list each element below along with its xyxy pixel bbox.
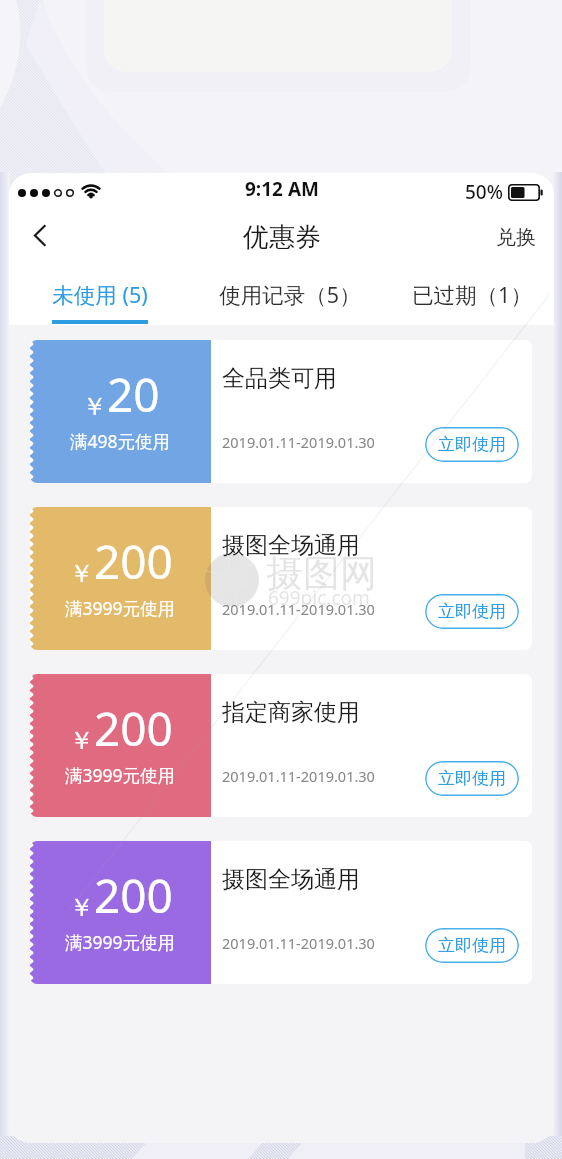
- staticText: 50%: [465, 179, 503, 205]
- staticText: 满498元使用: [70, 429, 171, 453]
- staticText: 优惠券: [243, 221, 321, 254]
- staticText: 摄图全场通用: [222, 531, 360, 560]
- staticText: 200: [94, 530, 173, 593]
- staticText: 200: [94, 697, 173, 760]
- staticText: 摄图网: [266, 550, 377, 597]
- button[interactable]: 未使用 (5): [9, 262, 190, 325]
- button[interactable]: 立即使用: [425, 761, 519, 796]
- staticText: 9:12 AM: [245, 176, 319, 202]
- button[interactable]: ￥: [30, 507, 532, 650]
- button[interactable]: 使用记录（5）: [190, 262, 372, 325]
- staticText: 20: [107, 363, 160, 426]
- staticText: 200: [94, 864, 173, 927]
- staticText: 立即使用: [438, 935, 506, 956]
- staticText: 2019.01.11-2019.01.30: [222, 599, 375, 619]
- staticText: 2019.01.11-2019.01.30: [222, 933, 375, 953]
- button[interactable]: 立即使用: [425, 594, 519, 629]
- staticText: 已过期（1）: [412, 280, 532, 309]
- staticText: 立即使用: [438, 768, 506, 789]
- staticText: ￥: [69, 558, 94, 589]
- button[interactable]: 立即使用: [425, 928, 519, 963]
- button[interactable]: ￥: [30, 841, 532, 984]
- staticText: 2019.01.11-2019.01.30: [222, 766, 375, 786]
- staticText: 立即使用: [438, 434, 506, 455]
- staticText: 摄图全场通用: [222, 865, 360, 894]
- staticText: ￥: [69, 892, 94, 923]
- staticText: 使用记录（5）: [219, 280, 361, 309]
- button[interactable]: 兑换: [492, 217, 540, 258]
- staticText: ￥: [82, 391, 107, 422]
- button[interactable]: Back: [20, 218, 60, 258]
- staticText: 699pic.com: [268, 585, 370, 611]
- staticText: 2019.01.11-2019.01.30: [222, 432, 375, 452]
- staticText: 立即使用: [438, 601, 506, 622]
- button[interactable]: ￥: [30, 674, 532, 817]
- staticText: 满3999元使用: [65, 930, 176, 954]
- staticText: 全品类可用: [222, 364, 337, 393]
- button[interactable]: 立即使用: [425, 427, 519, 462]
- staticText: 满3999元使用: [65, 596, 176, 620]
- button[interactable]: ￥: [30, 340, 532, 483]
- button[interactable]: 已过期（1）: [372, 262, 554, 325]
- staticText: 指定商家使用: [222, 698, 360, 727]
- staticText: 未使用 (5): [52, 280, 148, 309]
- staticText: 满3999元使用: [65, 763, 176, 787]
- staticText: 兑换: [496, 225, 536, 250]
- staticText: ￥: [69, 725, 94, 756]
